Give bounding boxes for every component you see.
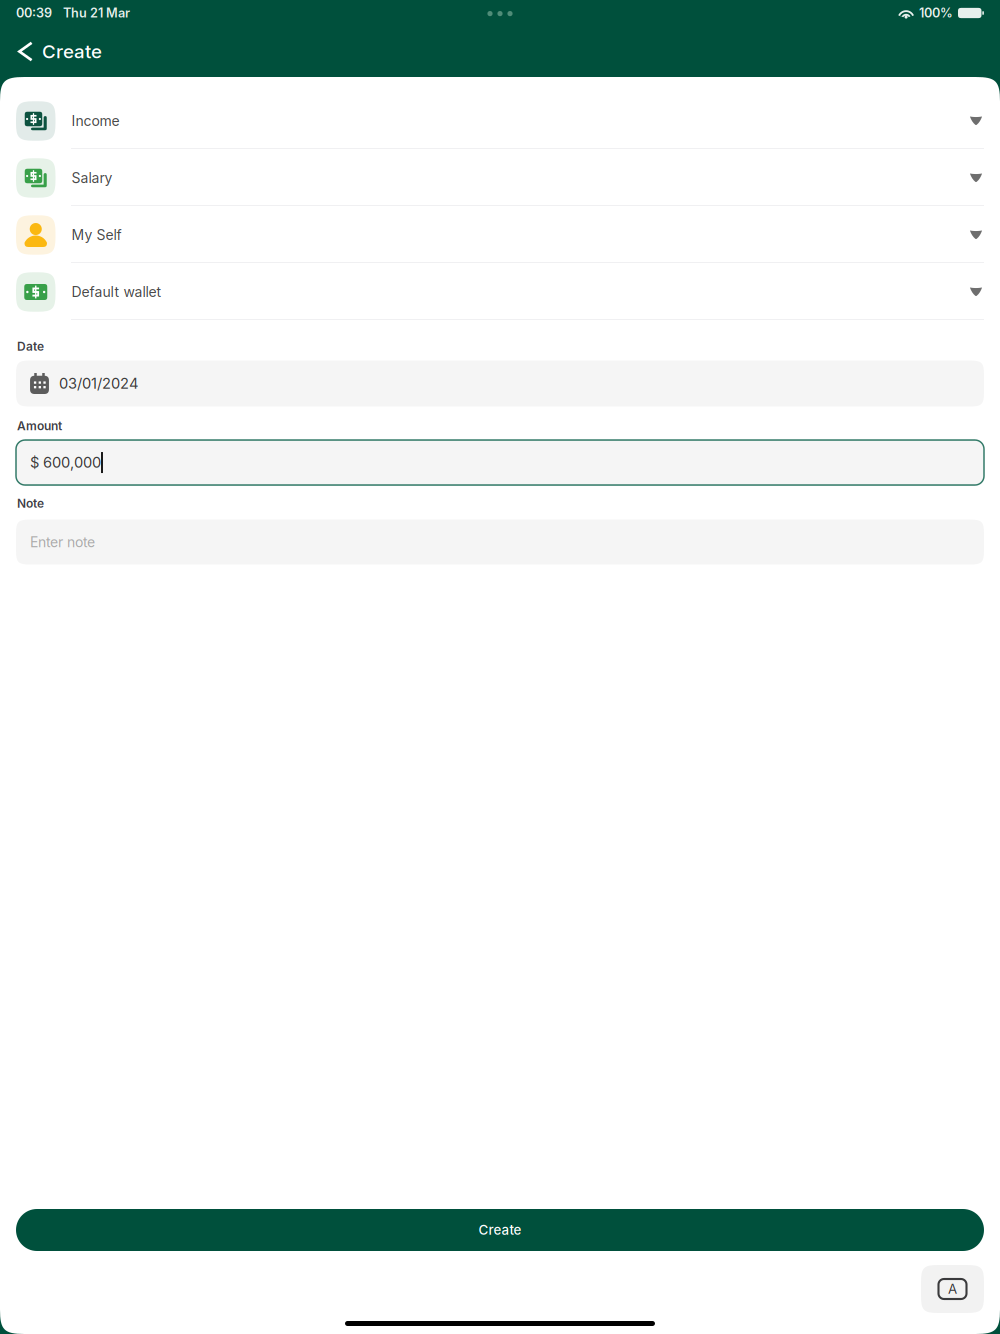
button[interactable]: Income [0, 77, 1000, 149]
button[interactable]: Keyboard [921, 1265, 984, 1313]
staticText: Salary [71, 169, 112, 186]
staticText: Create [478, 1222, 521, 1238]
staticText: $ 600,000 [30, 454, 101, 471]
button[interactable]: Back [9, 33, 42, 69]
button[interactable]: My Self [0, 206, 1000, 263]
staticText: 100% [919, 5, 953, 21]
staticText: Create [42, 40, 102, 63]
staticText: Note [17, 496, 44, 510]
button[interactable]: Default wallet [0, 263, 1000, 320]
button[interactable]: 03/01/2024 [0, 360, 1000, 406]
staticText: Enter note [30, 534, 95, 550]
staticText: Amount [17, 418, 62, 433]
staticText: Default wallet [71, 283, 161, 300]
staticText: Income [71, 112, 119, 129]
button[interactable]: Create [0, 1209, 1000, 1251]
staticText: 00:39 [16, 5, 52, 21]
staticText: 03/01/2024 [59, 375, 138, 392]
staticText: A [948, 1281, 957, 1297]
button[interactable]: Enter note [0, 520, 1000, 565]
staticText: My Self [71, 226, 121, 243]
button[interactable]: $ 600,000 [0, 440, 1000, 485]
staticText: Thu 21 Mar [63, 5, 130, 21]
staticText: Date [17, 339, 44, 353]
button[interactable]: Salary [0, 149, 1000, 206]
